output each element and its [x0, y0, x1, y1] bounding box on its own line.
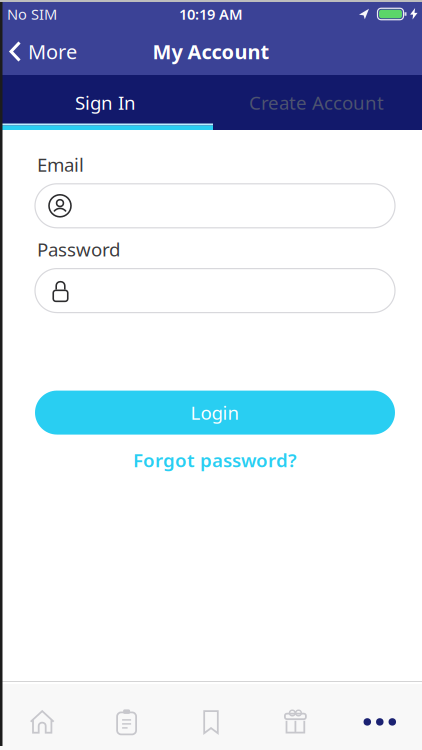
- staticText: Create Account: [249, 90, 384, 115]
- button[interactable]: Saved: [169, 699, 253, 745]
- staticText: My Account: [152, 38, 269, 65]
- staticText: No SIM: [7, 4, 57, 24]
- staticText: More: [28, 38, 77, 65]
- staticText: 10:19 AM: [179, 4, 243, 24]
- button[interactable]: Forgot password?: [35, 448, 395, 472]
- staticText: Email: [37, 152, 84, 177]
- button[interactable]: More: [338, 699, 422, 745]
- button[interactable]: Home: [0, 699, 84, 745]
- staticText: Login: [190, 400, 239, 425]
- button[interactable]: Rewards: [253, 699, 338, 745]
- staticText: Sign In: [75, 90, 136, 115]
- button[interactable]: Login: [35, 391, 395, 435]
- staticText: Forgot password?: [133, 448, 297, 472]
- button[interactable]: Orders: [84, 699, 169, 745]
- button[interactable]: Create Account: [211, 75, 422, 130]
- staticText: Password: [37, 237, 120, 262]
- button[interactable]: More: [0, 38, 77, 65]
- button[interactable]: Sign In: [0, 75, 211, 130]
